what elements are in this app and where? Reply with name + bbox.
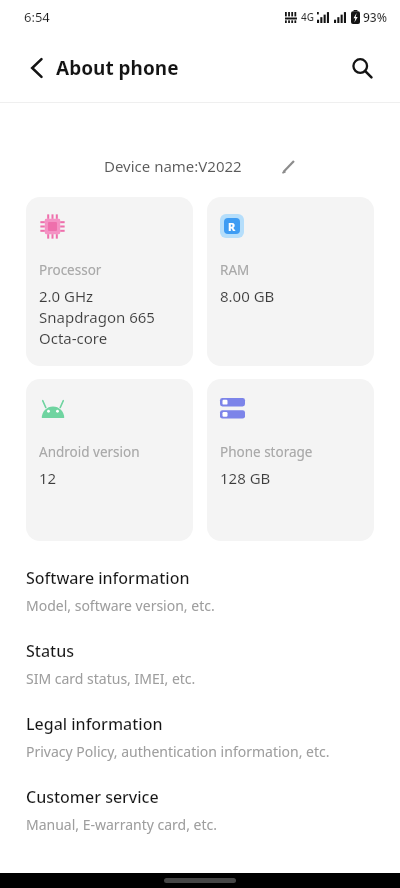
staticText: Software information xyxy=(26,567,190,589)
staticText: Android version xyxy=(39,443,140,461)
button[interactable]: Software information xyxy=(0,565,400,617)
button[interactable]: Back xyxy=(18,49,56,87)
staticText: SIM card status, IMEI, etc. xyxy=(26,669,196,688)
button[interactable]: Android version xyxy=(26,379,193,541)
staticText: Model, software version, etc. xyxy=(26,596,215,615)
staticText: 128 GB xyxy=(220,468,271,488)
staticText: R xyxy=(228,219,236,234)
button[interactable]: Legal information xyxy=(0,711,400,763)
staticText: Processor xyxy=(39,261,102,279)
staticText: 93% xyxy=(363,9,387,25)
staticText: 6:54 xyxy=(24,8,50,26)
button[interactable]: R xyxy=(207,197,374,366)
staticText: Legal information xyxy=(26,713,163,735)
staticText: 4G xyxy=(301,10,314,24)
staticText: Device name:V2022 xyxy=(104,156,242,176)
button[interactable]: Status xyxy=(0,638,400,690)
staticText: Privacy Policy, authentication informati… xyxy=(26,742,330,761)
staticText: Phone storage xyxy=(220,443,313,461)
button[interactable]: Processor xyxy=(26,197,193,366)
staticText: 12 xyxy=(39,468,57,488)
staticText: About phone xyxy=(56,55,179,81)
staticText: Customer service xyxy=(26,786,159,808)
button[interactable]: Phone storage xyxy=(207,379,374,541)
staticText: 8.00 GB xyxy=(220,286,275,306)
staticText: Status xyxy=(26,640,75,662)
staticText: RAM xyxy=(220,261,250,279)
button[interactable]: Search xyxy=(342,48,382,88)
button[interactable]: Device name:V2022 xyxy=(0,152,400,180)
staticText: 2.0 GHz Snapdragon 665 Octa-core xyxy=(39,286,155,349)
staticText: Manual, E-warranty card, etc. xyxy=(26,815,217,834)
button[interactable]: Customer service xyxy=(0,784,400,836)
